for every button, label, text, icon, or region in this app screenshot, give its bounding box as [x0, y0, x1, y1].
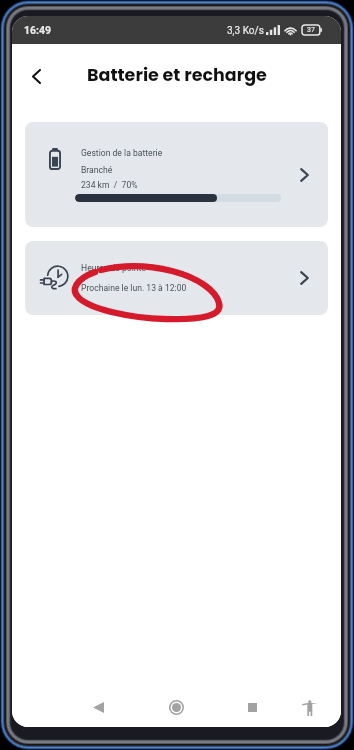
- staticText: 16:49: [24, 24, 52, 36]
- staticText: Branché: [81, 165, 113, 175]
- staticText: Batterie et recharge: [87, 63, 267, 88]
- staticText: 3,3 Ko/s: [227, 25, 264, 37]
- staticText: 234 km / 70%: [81, 180, 138, 190]
- button[interactable]: Applications récentes: [232, 688, 272, 727]
- button[interactable]: Retour: [78, 688, 118, 727]
- staticText: 37: [307, 26, 315, 34]
- button[interactable]: Retour: [19, 57, 55, 93]
- button[interactable]: Heures de pointe: [25, 241, 328, 315]
- button[interactable]: Gestion de la batterie: [25, 122, 328, 227]
- staticText: Gestion de la batterie: [81, 148, 163, 158]
- staticText: Heures de pointe: [81, 263, 146, 273]
- button[interactable]: Accessibilité: [290, 688, 330, 727]
- button[interactable]: Accueil: [156, 688, 196, 727]
- staticText: Prochaine le lun. 13 à 12:00: [81, 283, 187, 293]
